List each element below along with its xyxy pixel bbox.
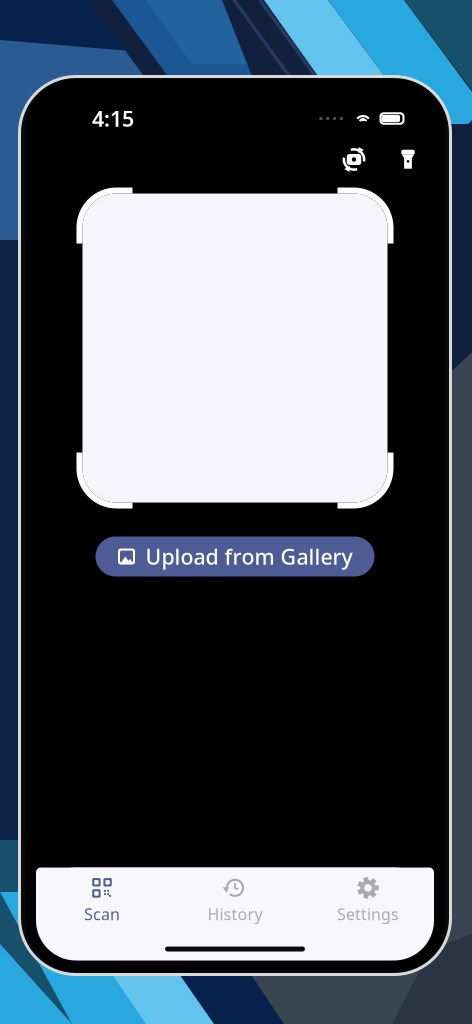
button[interactable]: Settings (301, 876, 434, 924)
button[interactable]: Flashlight (393, 142, 423, 176)
staticText: 4:15 (92, 104, 134, 133)
button[interactable]: Scan (35, 876, 168, 924)
staticText: Upload from Gallery (145, 542, 352, 571)
button[interactable]: Flip camera (337, 142, 371, 176)
staticText: History (207, 903, 262, 925)
button[interactable]: History (168, 876, 301, 924)
staticText: Settings (337, 903, 399, 925)
staticText: Scan (84, 903, 120, 925)
button[interactable]: Upload from Gallery (95, 536, 374, 576)
